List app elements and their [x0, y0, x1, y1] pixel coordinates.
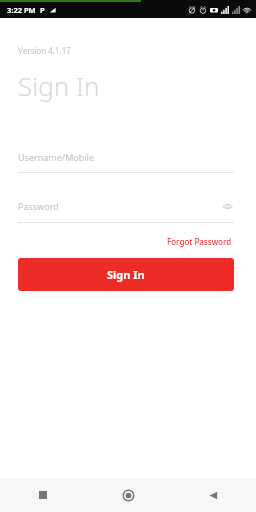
button[interactable]: Password — [18, 199, 234, 223]
staticText: 3:22 PM — [7, 5, 36, 15]
staticText: Sign In — [18, 68, 100, 103]
button[interactable]: Home — [86, 478, 171, 512]
staticText: Username/Mobile — [18, 151, 234, 163]
button[interactable]: Recents — [0, 478, 86, 512]
staticText: Forgot Password — [167, 236, 232, 247]
button[interactable]: Back — [171, 478, 256, 512]
button[interactable]: Show password — [220, 199, 234, 213]
button[interactable]: Forgot Password — [165, 234, 234, 249]
staticText: Password — [18, 200, 220, 212]
button[interactable]: Username/Mobile — [18, 151, 234, 173]
staticText: Sign In — [107, 267, 145, 282]
staticText: P — [40, 5, 45, 15]
button[interactable]: Sign In — [18, 258, 234, 291]
staticText: Version 4.1.17 — [18, 45, 71, 56]
